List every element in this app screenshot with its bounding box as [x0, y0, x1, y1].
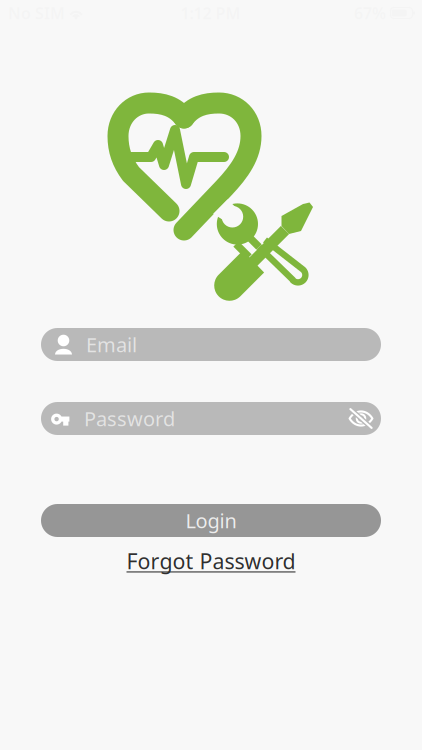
staticText: Login: [185, 507, 236, 534]
button[interactable]: Forgot Password: [0, 549, 422, 573]
staticText: Password: [84, 405, 175, 432]
button[interactable]: Login: [41, 504, 381, 537]
staticText: Email: [86, 331, 137, 358]
staticText: Forgot Password: [126, 547, 295, 575]
button[interactable]: Show password: [348, 407, 374, 429]
